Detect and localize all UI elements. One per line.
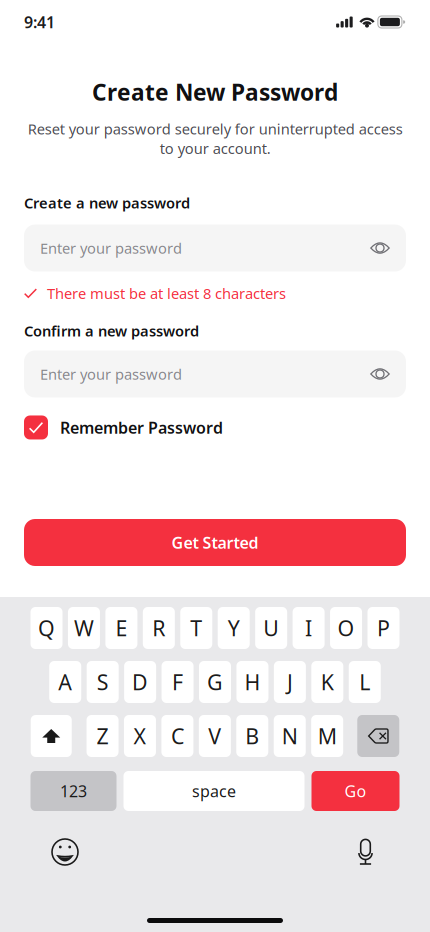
button[interactable]: 123 [30, 771, 116, 811]
staticText: Create New Password [92, 77, 338, 107]
button[interactable]: E [105, 607, 137, 649]
button[interactable]: Shift [31, 715, 72, 757]
staticText: Z [96, 722, 108, 750]
button[interactable]: Emoji keyboard [52, 839, 78, 865]
button[interactable]: X [124, 715, 156, 757]
button[interactable]: U [255, 607, 287, 649]
button[interactable]: S [87, 661, 119, 703]
button[interactable]: O [330, 607, 362, 649]
staticText: X [133, 722, 146, 750]
button[interactable]: C [161, 715, 193, 757]
button[interactable]: Q [30, 607, 62, 649]
staticText: W [74, 614, 94, 642]
staticText: E [115, 614, 127, 642]
button[interactable]: B [236, 715, 268, 757]
staticText: M [318, 722, 337, 750]
staticText: P [377, 614, 390, 642]
button[interactable]: J [274, 661, 306, 703]
button[interactable]: D [124, 661, 156, 703]
staticText: G [207, 668, 223, 696]
staticText: 123 [60, 780, 87, 802]
staticText: C [171, 722, 184, 750]
staticText: Enter your password [40, 364, 182, 384]
staticText: H [244, 668, 260, 696]
button[interactable]: H [236, 661, 268, 703]
button[interactable]: N [274, 715, 306, 757]
button[interactable]: Dictation [358, 839, 373, 865]
staticText: Enter your password [40, 238, 182, 258]
button[interactable]: F [162, 661, 194, 703]
staticText: Get Started [171, 532, 258, 553]
button[interactable]: Get Started [24, 519, 406, 566]
button[interactable]: Remember Password [24, 415, 406, 439]
staticText: K [321, 668, 334, 696]
staticText: L [359, 668, 370, 696]
staticText: O [337, 614, 354, 642]
button[interactable]: Y [218, 607, 250, 649]
staticText: R [152, 614, 165, 642]
button[interactable]: V [199, 715, 231, 757]
button[interactable]: Enter your password [24, 224, 406, 271]
staticText: N [282, 722, 298, 750]
staticText: Y [228, 614, 240, 642]
button[interactable]: W [68, 607, 100, 649]
button[interactable]: Delete [357, 715, 399, 757]
button[interactable]: space [123, 771, 304, 811]
staticText: 9:41 [24, 11, 55, 33]
button[interactable]: A [49, 661, 81, 703]
button[interactable]: K [311, 661, 343, 703]
button[interactable]: P [367, 607, 399, 649]
staticText: D [132, 668, 148, 696]
staticText: space [192, 780, 236, 802]
staticText: Confirm a new password [24, 321, 199, 340]
staticText: U [263, 614, 279, 642]
staticText: Create a new password [24, 193, 190, 213]
button[interactable]: Z [86, 715, 118, 757]
staticText: S [97, 668, 109, 696]
button[interactable]: I [293, 607, 325, 649]
button[interactable]: Enter your password [24, 350, 406, 397]
staticText: A [58, 668, 72, 696]
staticText: Go [344, 780, 366, 802]
staticText: Reset your password securely for uninter… [27, 119, 402, 158]
staticText: B [245, 722, 259, 750]
button[interactable]: Go [311, 771, 399, 811]
button[interactable]: L [349, 661, 381, 703]
staticText: There must be at least 8 characters [47, 283, 286, 303]
staticText: Q [38, 614, 55, 642]
staticText: J [287, 668, 293, 696]
staticText: F [172, 668, 183, 696]
staticText: T [190, 614, 202, 642]
button[interactable]: R [143, 607, 175, 649]
staticText: I [305, 614, 312, 642]
staticText: Remember Password [60, 417, 223, 438]
button[interactable]: M [311, 715, 343, 757]
button[interactable]: T [180, 607, 212, 649]
button[interactable]: G [199, 661, 231, 703]
staticText: V [208, 722, 221, 750]
